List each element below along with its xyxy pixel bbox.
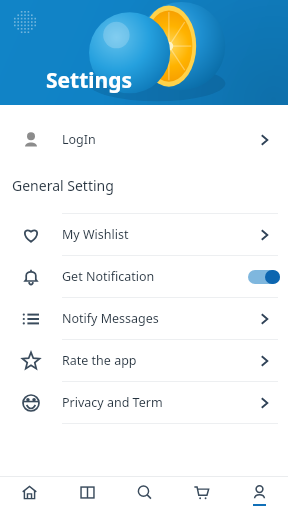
staticText: My Wishlist <box>62 226 240 243</box>
button[interactable]: Privacy and Term <box>0 382 288 423</box>
staticText: LogIn <box>62 131 240 148</box>
button[interactable]: Search <box>116 477 172 512</box>
staticText: Rate the app <box>62 352 240 369</box>
button[interactable]: My Wishlist <box>0 214 288 255</box>
staticText: Privacy and Term <box>62 394 240 411</box>
staticText: Notify Messages <box>62 310 240 327</box>
button[interactable]: Rate the app <box>0 340 288 381</box>
button[interactable]: Home <box>1 477 57 512</box>
staticText: Settings <box>46 66 133 95</box>
button[interactable]: Profile <box>231 477 287 512</box>
button[interactable]: Get Notification <box>0 256 288 297</box>
staticText: Get Notification <box>62 268 240 285</box>
staticText: General Setting <box>12 176 114 195</box>
button[interactable]: Categories <box>59 477 115 512</box>
button[interactable]: Cart <box>173 477 229 512</box>
button[interactable]: LogIn <box>0 119 288 160</box>
button[interactable]: Notify Messages <box>0 298 288 339</box>
button[interactable] <box>248 270 280 284</box>
